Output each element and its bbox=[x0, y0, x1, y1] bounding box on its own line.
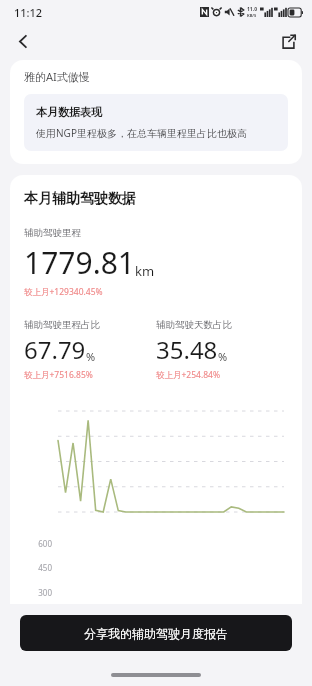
staticText: 较上月+7516.85% bbox=[24, 369, 93, 381]
staticText: 较上月+254.84% bbox=[156, 369, 221, 381]
staticText: 本月辅助驾驶数据 bbox=[24, 190, 136, 208]
staticText: 35.48 bbox=[156, 333, 218, 366]
staticText: 较上月+129340.45% bbox=[24, 286, 103, 298]
staticText: 雅的AI式傲慢 bbox=[24, 69, 90, 84]
button[interactable]: Back bbox=[6, 24, 40, 58]
staticText: 分享我的辅助驾驶月度报告 bbox=[84, 626, 228, 641]
staticText: 辅助驾驶里程 bbox=[24, 227, 81, 239]
staticText: 本月数据表现 bbox=[36, 105, 102, 119]
staticText: 11:12 bbox=[14, 5, 43, 20]
staticText: 150 bbox=[38, 611, 52, 622]
staticText: % bbox=[218, 349, 228, 364]
button[interactable]: 分享我的辅助驾驶月度报告 bbox=[20, 615, 292, 651]
staticText: 450 bbox=[38, 562, 52, 573]
staticText: 300 bbox=[38, 587, 52, 598]
staticText: 辅助驾驶天数占比 bbox=[156, 319, 232, 331]
staticText: 67.79 bbox=[24, 333, 86, 366]
staticText: km bbox=[135, 262, 155, 280]
staticText: 11.0 bbox=[247, 6, 257, 13]
staticText: 辅助驾驶里程占比 bbox=[24, 319, 100, 331]
staticText: 使用NGP里程极多，在总车辆里程里占比也极高 bbox=[36, 126, 247, 140]
button[interactable]: Share bbox=[272, 25, 304, 57]
staticText: 1779.81 bbox=[24, 242, 135, 283]
staticText: KB/S bbox=[247, 13, 257, 18]
staticText: 600 bbox=[38, 538, 52, 549]
staticText: % bbox=[86, 349, 96, 364]
